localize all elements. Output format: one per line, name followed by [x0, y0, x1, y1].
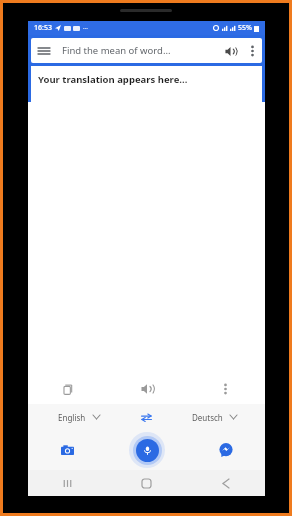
- button[interactable]: Back: [186, 470, 265, 496]
- button[interactable]: English: [28, 404, 129, 430]
- button[interactable]: Swap languages: [129, 404, 163, 430]
- button[interactable]: Home: [107, 470, 186, 496]
- button[interactable]: More options: [186, 374, 265, 404]
- staticText: 55%: [238, 23, 252, 33]
- button[interactable]: Deutsch: [163, 404, 265, 430]
- button[interactable]: Messenger: [186, 430, 265, 470]
- staticText: English: [58, 412, 86, 423]
- button[interactable]: Menu: [31, 38, 262, 63]
- button[interactable]: Listen: [107, 374, 186, 404]
- button[interactable]: Your translation appears here...: [31, 66, 262, 102]
- staticText: ···: [83, 24, 88, 32]
- staticText: Deutsch: [192, 412, 223, 423]
- button[interactable]: Camera translate: [28, 430, 107, 470]
- button[interactable]: Listen: [218, 39, 242, 63]
- button[interactable]: Menu: [31, 38, 57, 63]
- button[interactable]: Clear: [28, 374, 107, 404]
- button[interactable]: Recents: [28, 470, 107, 496]
- staticText: Find the mean of word...: [62, 44, 218, 57]
- button[interactable]: Voice input: [107, 430, 186, 470]
- staticText: 16:53: [34, 23, 52, 33]
- button[interactable]: More options: [242, 41, 262, 61]
- staticText: Your translation appears here...: [38, 73, 188, 86]
